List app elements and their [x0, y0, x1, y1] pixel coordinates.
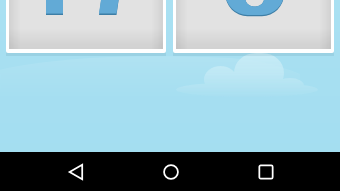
- button[interactable]: [176, 0, 331, 49]
- button[interactable]: Recents: [246, 152, 286, 191]
- button[interactable]: Home: [151, 152, 191, 191]
- button[interactable]: Back: [56, 152, 96, 191]
- button[interactable]: [9, 0, 163, 49]
